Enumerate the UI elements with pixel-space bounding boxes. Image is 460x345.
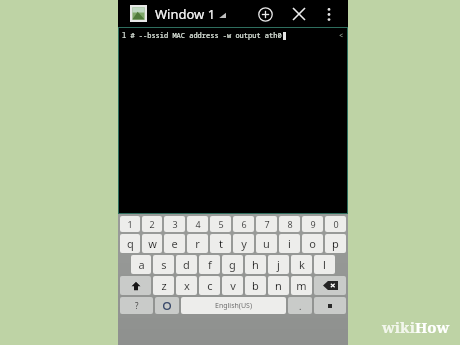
button[interactable]: 4 <box>187 216 208 232</box>
button[interactable]: c <box>199 276 220 295</box>
button[interactable]: s <box>153 255 174 274</box>
staticText: o <box>309 236 316 251</box>
button[interactable]: More options <box>318 3 340 25</box>
staticText: i <box>288 236 291 251</box>
staticText: j <box>277 257 280 272</box>
button[interactable]: App icon <box>130 5 147 22</box>
button[interactable]: Symbols <box>120 297 153 314</box>
button[interactable]: New window <box>252 1 278 27</box>
staticText: t <box>219 236 223 251</box>
button[interactable]: Close window <box>286 1 312 27</box>
button[interactable]: 8 <box>279 216 300 232</box>
button[interactable]: 9 <box>302 216 323 232</box>
button[interactable]: o <box>302 234 323 253</box>
staticText: y <box>241 236 247 251</box>
button[interactable]: y <box>233 234 254 253</box>
staticText: x <box>184 278 190 293</box>
staticText: l <box>323 257 326 272</box>
button[interactable]: q <box>120 234 140 253</box>
button[interactable]: d <box>176 255 197 274</box>
button[interactable]: 1 <box>120 216 140 232</box>
staticText: p <box>332 236 339 251</box>
button[interactable]: Shift <box>120 276 151 295</box>
button[interactable]: z <box>153 276 174 295</box>
staticText: How <box>415 317 450 337</box>
button[interactable]: v <box>222 276 243 295</box>
staticText: a <box>138 257 145 272</box>
button[interactable]: 3 <box>164 216 185 232</box>
staticText: 4 <box>195 218 201 230</box>
staticText: m <box>296 278 307 293</box>
staticText: 9 <box>310 218 316 230</box>
button[interactable]: t <box>210 234 231 253</box>
button[interactable]: n <box>268 276 289 295</box>
staticText: k <box>299 257 305 272</box>
staticText: g <box>229 257 236 272</box>
staticText: 5 <box>218 218 224 230</box>
button[interactable]: b <box>245 276 266 295</box>
button[interactable]: Enter <box>314 297 346 314</box>
button[interactable]: i <box>279 234 300 253</box>
staticText: wiki <box>382 317 415 337</box>
button[interactable]: h <box>245 255 266 274</box>
staticText: v <box>230 278 236 293</box>
staticText: h <box>252 257 259 272</box>
button[interactable]: l # --bssid MAC address -w output ath0 <box>118 28 348 213</box>
button[interactable]: Punctuation <box>288 297 312 314</box>
staticText: c <box>207 278 213 293</box>
staticText: 2 <box>149 218 155 230</box>
button[interactable]: e <box>164 234 185 253</box>
staticText: 6 <box>241 218 247 230</box>
button[interactable]: 6 <box>233 216 254 232</box>
button[interactable]: Backspace <box>314 276 346 295</box>
staticText: z <box>161 278 167 293</box>
button[interactable]: 7 <box>256 216 277 232</box>
staticText: r <box>195 236 200 251</box>
button[interactable]: Keyboard settings <box>155 297 179 314</box>
button[interactable]: English(US) <box>181 297 286 314</box>
button[interactable]: 0 <box>325 216 346 232</box>
button[interactable]: f <box>199 255 220 274</box>
button[interactable]: p <box>325 234 346 253</box>
button[interactable]: 2 <box>142 216 162 232</box>
staticText: l # --bssid MAC address -w output ath0 <box>122 31 282 41</box>
button[interactable]: u <box>256 234 277 253</box>
staticText: ? <box>135 300 139 311</box>
button[interactable]: l <box>314 255 335 274</box>
staticText: f <box>208 257 212 272</box>
staticText: u <box>263 236 270 251</box>
staticText: 7 <box>264 218 270 230</box>
button[interactable]: x <box>176 276 197 295</box>
button[interactable]: w <box>142 234 162 253</box>
staticText: Window 1 <box>155 5 216 23</box>
staticText: w <box>148 236 157 251</box>
button[interactable]: m <box>291 276 312 295</box>
staticText: < <box>339 31 344 41</box>
staticText: q <box>127 236 134 251</box>
button[interactable]: 5 <box>210 216 231 232</box>
button[interactable]: g <box>222 255 243 274</box>
staticText: s <box>161 257 167 272</box>
button[interactable]: r <box>187 234 208 253</box>
staticText: 1 <box>127 218 133 230</box>
staticText: b <box>252 278 259 293</box>
staticText: 8 <box>287 218 293 230</box>
staticText: . <box>299 300 302 312</box>
staticText: 0 <box>333 218 339 230</box>
staticText: d <box>183 257 190 272</box>
staticText: n <box>275 278 282 293</box>
staticText: e <box>171 236 178 251</box>
staticText: 3 <box>172 218 178 230</box>
staticText: English(US) <box>215 301 252 311</box>
button[interactable]: j <box>268 255 289 274</box>
button[interactable]: k <box>291 255 312 274</box>
button[interactable]: a <box>131 255 151 274</box>
